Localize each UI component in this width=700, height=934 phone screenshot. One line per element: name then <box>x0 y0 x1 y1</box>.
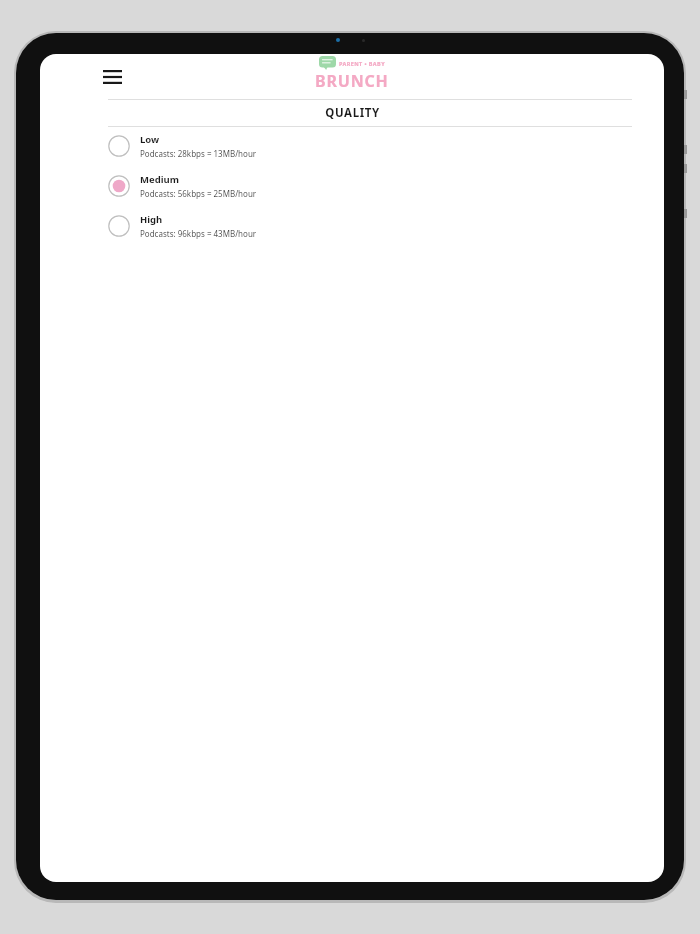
button[interactable]: Medium <box>108 173 632 199</box>
button[interactable]: Parent and Baby Brunch home <box>315 56 389 92</box>
staticText: QUALITY <box>325 105 380 121</box>
button[interactable]: Low <box>108 133 632 159</box>
staticText: High <box>140 213 163 226</box>
staticText: BRUNCH <box>315 70 389 92</box>
staticText: PARENT • BABY <box>339 60 385 67</box>
staticText: Medium <box>140 173 179 186</box>
button[interactable]: Menu <box>97 62 127 92</box>
staticText: Podcasts: 96kbps = 43MB/hour <box>140 228 257 239</box>
staticText: Podcasts: 28kbps = 13MB/hour <box>140 148 257 159</box>
staticText: Low <box>140 133 160 146</box>
button[interactable]: High <box>108 213 632 239</box>
staticText: Podcasts: 56kbps = 25MB/hour <box>140 188 257 199</box>
